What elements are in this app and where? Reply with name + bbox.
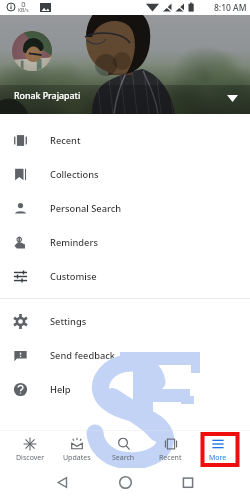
- staticText: 0: [21, 0, 26, 9]
- button[interactable]: Reminders: [0, 225, 250, 259]
- staticText: Collections: [50, 168, 99, 181]
- button[interactable]: Help: [0, 372, 250, 406]
- staticText: KB/s: [18, 7, 29, 14]
- staticText: Customise: [50, 270, 97, 283]
- staticText: 8:10 AM: [214, 2, 247, 14]
- button[interactable]: Settings: [0, 304, 250, 338]
- button[interactable]: Send feedback: [0, 338, 250, 372]
- staticText: Personal Search: [50, 202, 122, 215]
- staticText: Settings: [50, 315, 87, 328]
- button[interactable]: Personal Search: [0, 191, 250, 225]
- button[interactable]: Updates: [53, 431, 100, 468]
- button[interactable]: Recent: [0, 123, 250, 157]
- button[interactable]: More: [194, 431, 241, 468]
- button[interactable]: Collections: [0, 157, 250, 191]
- staticText: Search: [112, 453, 135, 463]
- staticText: Reminders: [50, 236, 98, 249]
- button[interactable]: Profile photo: [12, 31, 52, 71]
- staticText: Send feedback: [50, 349, 116, 362]
- staticText: Help: [50, 383, 71, 396]
- button[interactable]: Expand account list: [222, 88, 242, 108]
- button[interactable]: Search: [100, 431, 147, 468]
- button[interactable]: Discover: [7, 431, 53, 468]
- staticText: Recent: [159, 453, 182, 463]
- button[interactable]: Customise: [0, 259, 250, 293]
- staticText: Discover: [16, 453, 45, 463]
- staticText: Recent: [50, 134, 81, 147]
- staticText: Ronak Prajapati: [14, 90, 81, 102]
- button[interactable]: Recent: [147, 431, 194, 468]
- staticText: More: [209, 453, 227, 463]
- staticText: Updates: [63, 453, 91, 463]
